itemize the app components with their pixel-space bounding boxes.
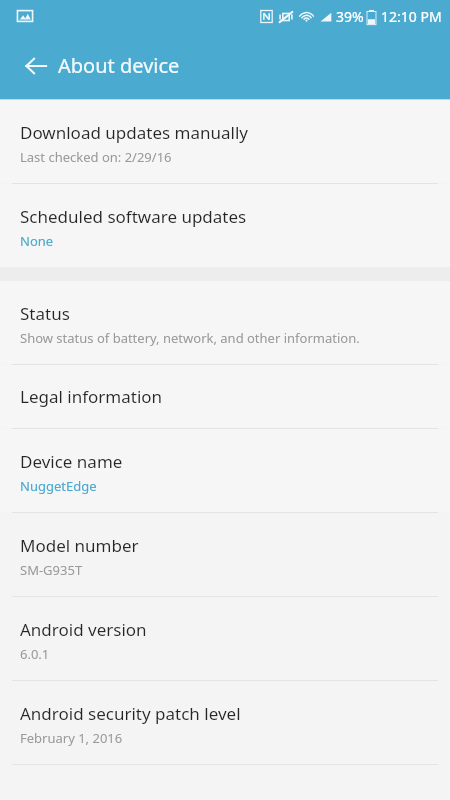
button[interactable]: Download updates manually bbox=[0, 100, 450, 183]
button[interactable]: Navigate up bbox=[14, 44, 58, 88]
button[interactable]: Android version bbox=[0, 597, 450, 680]
staticText: Model number bbox=[20, 534, 139, 557]
button[interactable]: Status bbox=[0, 281, 450, 364]
staticText: Scheduled software updates bbox=[20, 205, 247, 228]
staticText: NuggetEdge bbox=[20, 477, 97, 495]
staticText: None bbox=[20, 232, 54, 250]
staticText: Android security patch level bbox=[20, 702, 241, 725]
staticText: 39% bbox=[336, 7, 364, 26]
staticText: Last checked on: 2/29/16 bbox=[20, 148, 172, 166]
staticText: Show status of battery, network, and oth… bbox=[20, 329, 360, 347]
staticText: February 1, 2016 bbox=[20, 729, 123, 747]
staticText: Download updates manually bbox=[20, 121, 248, 144]
staticText: Status bbox=[20, 302, 70, 325]
staticText: About device bbox=[58, 52, 180, 79]
button[interactable]: Scheduled software updates bbox=[0, 184, 450, 267]
staticText: Device name bbox=[20, 450, 123, 473]
button[interactable]: Android security patch level bbox=[0, 681, 450, 764]
staticText: SM-G935T bbox=[20, 561, 83, 579]
staticText: Legal information bbox=[20, 385, 163, 408]
staticText: 12:10 PM bbox=[381, 7, 442, 26]
button[interactable]: Legal information bbox=[0, 365, 450, 428]
staticText: 6.0.1 bbox=[20, 645, 50, 663]
staticText: Android version bbox=[20, 618, 147, 641]
button[interactable]: Device name bbox=[0, 429, 450, 512]
button[interactable]: Model number bbox=[0, 513, 450, 596]
